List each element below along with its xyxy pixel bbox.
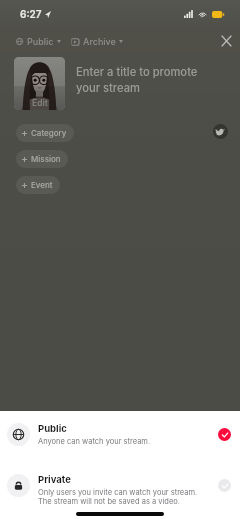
button[interactable]: Close [215,30,237,52]
button[interactable]: Public [16,34,61,49]
button[interactable]: Category [16,124,74,142]
button[interactable]: Public [0,422,240,446]
staticText: Public [27,36,54,47]
button[interactable]: Edit avatar [14,57,65,110]
staticText: Mission [31,154,61,164]
button[interactable]: Private [0,473,240,497]
staticText: Anyone can watch your stream. [38,437,151,446]
staticText: Private [38,474,71,485]
staticText: 6:27 [20,8,42,20]
staticText: Event [31,180,53,190]
button[interactable]: Mission [16,150,68,168]
button[interactable]: Event [16,176,60,194]
button[interactable]: Archive [71,34,123,49]
button[interactable]: Share on Twitter [213,124,228,139]
staticText: Archive [83,36,116,47]
button[interactable]: Enter a title to promote your stream [76,65,214,95]
staticText: Edit [32,98,48,108]
staticText: Category [31,128,67,138]
staticText: The stream will not be saved as a video. [38,497,180,506]
staticText: Public [38,423,67,434]
staticText: Enter a title to promote your stream [76,65,214,95]
staticText: Only users you invite can watch your str… [38,488,198,497]
